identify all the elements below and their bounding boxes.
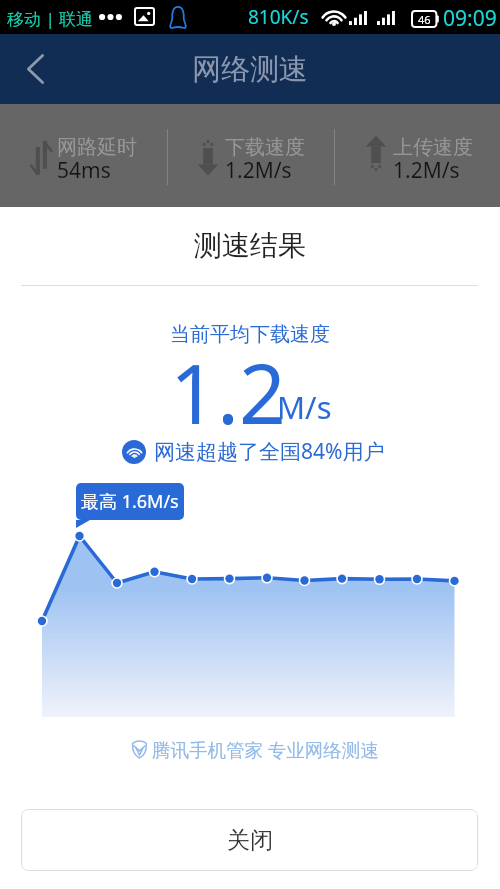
staticText: 关闭	[227, 826, 273, 855]
staticText: 1.2	[170, 336, 286, 448]
staticText: 54ms	[57, 156, 111, 185]
staticText: 网络测速	[192, 51, 308, 88]
staticText: 网速超越了全国84%用户	[154, 437, 385, 466]
button[interactable]: Back	[11, 45, 59, 93]
staticText: 测速结果	[0, 228, 500, 263]
staticText: 最高 1.6M/s	[81, 489, 179, 514]
staticText: 上传速度	[393, 135, 473, 160]
staticText: 46	[418, 12, 431, 27]
staticText: M/s	[277, 386, 332, 428]
staticText: 当前平均下载速度	[0, 322, 500, 347]
staticText: 09:09	[443, 4, 497, 33]
staticText: 1.2M/s	[225, 156, 292, 185]
staticText: 移动 | 联通	[7, 7, 94, 30]
staticText: 1.2M/s	[393, 156, 460, 185]
staticText: 810K/s	[248, 4, 309, 30]
staticText: 下载速度	[225, 135, 305, 160]
button[interactable]: 关闭	[21, 809, 478, 871]
staticText: 腾讯手机管家 专业网络测速	[152, 737, 379, 762]
staticText: 网路延时	[57, 135, 137, 160]
